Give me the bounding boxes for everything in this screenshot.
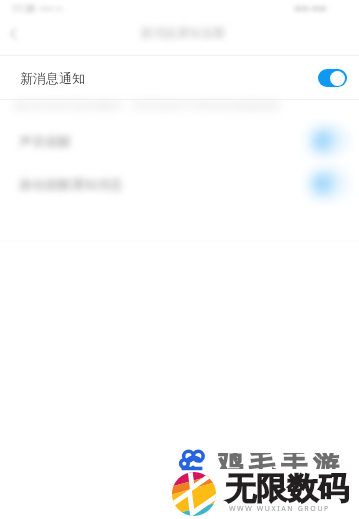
button[interactable]: Toggle: [301, 162, 356, 206]
staticText: ▬▬ ▬▬: [294, 2, 327, 13]
button[interactable]: Toggle: [301, 119, 356, 163]
staticText: 11:38 •••• ••: [12, 2, 63, 14]
staticText: WWW WUXIAN GROUP: [229, 504, 330, 514]
staticText: 振动提醒通知消息: [19, 176, 123, 192]
staticText: 鸡毛手游: [214, 453, 342, 469]
staticText: 新消息通知设置: [141, 25, 225, 40]
staticText: 接收新消息时通知提醒你 关闭后将收不到新消息的提醒通知: [13, 98, 281, 112]
staticText: 无限数码: [225, 469, 349, 508]
button[interactable]: Toggle new message notification: [318, 69, 347, 87]
button[interactable]: 新消息通知: [0, 55, 359, 101]
staticText: 声音提醒: [19, 133, 71, 149]
button[interactable]: Back: [2, 22, 26, 46]
staticText: 新消息通知: [20, 70, 85, 86]
